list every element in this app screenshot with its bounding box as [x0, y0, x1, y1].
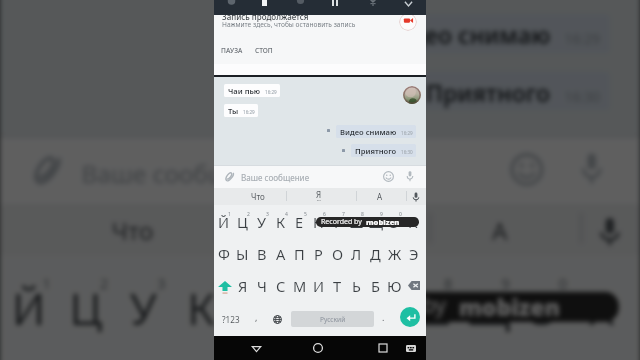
button[interactable]: Видео снимаю: [336, 125, 416, 138]
staticText: 4: [285, 211, 288, 218]
staticText: Видео снимаю: [340, 127, 397, 137]
staticText: 9: [380, 211, 383, 218]
button[interactable]: Т: [328, 272, 347, 300]
button[interactable]: СТОП: [253, 44, 275, 57]
button[interactable]: Й: [214, 208, 233, 236]
staticText: Ы: [236, 244, 249, 264]
other: Emoji: [510, 153, 543, 186]
button[interactable]: Щ: [459, 264, 516, 349]
button[interactable]: У: [115, 264, 172, 349]
button[interactable]: Русский: [291, 311, 374, 327]
button[interactable]: А: [426, 204, 577, 255]
staticText: В: [257, 244, 267, 264]
button[interactable]: Change keyboard language: [268, 305, 287, 333]
staticText: ?123: [222, 314, 240, 325]
staticText: Приятного: [355, 146, 397, 156]
button[interactable]: А: [355, 188, 405, 205]
button[interactable]: Я: [294, 188, 344, 205]
staticText: 5: [304, 211, 307, 218]
button[interactable]: Send: [400, 307, 420, 327]
staticText: Ь: [352, 276, 361, 296]
button[interactable]: Приятного: [351, 144, 416, 157]
button[interactable]: Recents: [371, 336, 395, 360]
staticText: СТОП: [255, 46, 273, 55]
button[interactable]: Back: [244, 336, 268, 360]
staticText: Чаи пью: [228, 86, 261, 96]
staticText: Й: [218, 212, 230, 232]
button[interactable]: С: [271, 272, 290, 300]
button[interactable]: ?123: [216, 305, 246, 333]
button[interactable]: Г: [328, 208, 347, 236]
button[interactable]: К: [172, 264, 229, 349]
staticText: К: [276, 212, 286, 232]
button[interactable]: Home: [306, 336, 330, 360]
button[interactable]: Й: [0, 264, 57, 349]
button[interactable]: ПАУЗА: [219, 44, 245, 57]
staticText: Ваше сообщение: [241, 172, 310, 183]
staticText: Н: [299, 277, 332, 337]
button[interactable]: Я: [241, 204, 392, 255]
staticText: Ш: [349, 212, 365, 232]
button[interactable]: Что: [57, 204, 208, 255]
button[interactable]: Е: [229, 264, 287, 349]
staticText: Recorded by: [323, 292, 447, 322]
button[interactable]: О: [328, 240, 347, 268]
button[interactable]: Е: [290, 208, 309, 236]
button[interactable]: Я: [233, 272, 252, 300]
staticText: Г: [362, 277, 386, 337]
button[interactable]: Ю: [385, 272, 404, 300]
button[interactable]: Л: [347, 240, 366, 268]
button[interactable]: Чаи пью: [224, 84, 280, 97]
staticText: Р: [314, 244, 323, 264]
button[interactable]: ,: [248, 305, 264, 333]
button[interactable]: .: [375, 305, 391, 333]
button[interactable]: Видео снимаю: [368, 14, 610, 53]
button[interactable]: Приятного: [414, 71, 610, 110]
button[interactable]: Б: [366, 272, 385, 300]
staticText: 7: [342, 211, 345, 218]
button[interactable]: Contact avatar: [403, 86, 421, 104]
staticText: Б: [371, 276, 380, 296]
staticText: Что: [112, 213, 154, 246]
button[interactable]: Н: [287, 264, 344, 349]
button[interactable]: Ц: [57, 264, 115, 349]
button[interactable]: И: [309, 272, 328, 300]
button[interactable]: Э: [404, 240, 423, 268]
button[interactable]: Н: [309, 208, 328, 236]
staticText: З: [390, 212, 399, 232]
button[interactable]: Ты: [224, 104, 258, 117]
button[interactable]: Х: [574, 264, 631, 349]
button[interactable]: Ы: [233, 240, 252, 268]
button[interactable]: Ш: [347, 208, 366, 236]
button[interactable]: П: [290, 240, 309, 268]
button[interactable]: М: [290, 272, 309, 300]
staticText: О: [332, 244, 344, 264]
button[interactable]: Щ: [366, 208, 385, 236]
button[interactable]: Ф: [214, 240, 233, 268]
button[interactable]: А: [271, 240, 290, 268]
staticText: mobizen: [366, 217, 400, 227]
button[interactable]: Х: [404, 208, 423, 236]
button[interactable]: Ь: [347, 272, 366, 300]
button[interactable]: З: [385, 208, 404, 236]
button[interactable]: Г: [344, 264, 402, 349]
button[interactable]: Switch keyboard: [399, 336, 423, 360]
button[interactable]: Ч: [252, 272, 271, 300]
staticText: К: [187, 277, 217, 337]
staticText: 16:30: [401, 149, 413, 155]
button[interactable]: Что: [233, 188, 283, 205]
button[interactable]: В: [252, 240, 271, 268]
button[interactable]: З: [516, 264, 574, 349]
staticText: 0: [558, 274, 568, 295]
staticText: Н: [313, 212, 324, 232]
button[interactable]: Ц: [233, 208, 252, 236]
staticText: Русский: [320, 315, 346, 324]
button[interactable]: Р: [309, 240, 328, 268]
button[interactable]: Ш: [401, 264, 459, 349]
button[interactable]: Д: [366, 240, 385, 268]
button[interactable]: К: [271, 208, 290, 236]
button[interactable]: Ж: [385, 240, 404, 268]
staticText: С: [276, 276, 286, 296]
button[interactable]: У: [252, 208, 271, 236]
